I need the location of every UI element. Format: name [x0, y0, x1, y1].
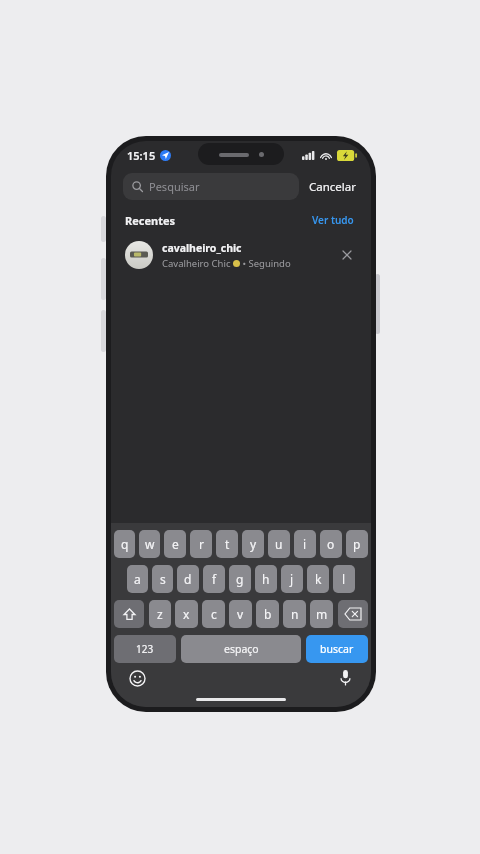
button[interactable]: c	[202, 600, 225, 628]
staticText: d	[184, 571, 192, 587]
button[interactable]: g	[229, 565, 251, 593]
staticText: l	[342, 571, 346, 587]
button[interactable]: n	[283, 600, 306, 628]
button[interactable]: l	[333, 565, 355, 593]
button[interactable]: Shift	[114, 600, 144, 628]
staticText: Recentes	[125, 213, 176, 228]
button[interactable]: p	[346, 530, 368, 558]
staticText: e	[172, 536, 179, 552]
button[interactable]: o	[320, 530, 342, 558]
button[interactable]: h	[255, 565, 277, 593]
button[interactable]: Ditado por voz	[334, 667, 356, 689]
staticText: a	[134, 571, 141, 587]
staticText: Cancelar	[309, 179, 357, 195]
staticText: cavalheiro_chic	[162, 241, 242, 255]
staticText: m	[316, 606, 328, 622]
button[interactable]: v	[229, 600, 252, 628]
button[interactable]: f	[203, 565, 225, 593]
button[interactable]: s	[152, 565, 173, 593]
button[interactable]: Ver tudo	[309, 210, 357, 230]
button[interactable]: Emoji	[126, 667, 148, 689]
button[interactable]: e	[164, 530, 186, 558]
button[interactable]: z	[149, 600, 171, 628]
staticText: h	[262, 571, 270, 587]
button[interactable]: j	[281, 565, 303, 593]
staticText: z	[157, 606, 163, 622]
staticText: t	[225, 536, 230, 552]
button[interactable]: m	[310, 600, 333, 628]
staticText: espaço	[224, 642, 259, 656]
button[interactable]: Pesquisar	[123, 173, 299, 200]
staticText: b	[264, 606, 272, 622]
button[interactable]: u	[268, 530, 290, 558]
button[interactable]: espaço	[181, 635, 301, 663]
staticText: 123	[136, 642, 154, 656]
button[interactable]: x	[175, 600, 198, 628]
staticText: x	[183, 606, 190, 622]
button[interactable]: Remover	[337, 245, 357, 265]
button[interactable]: q	[114, 530, 135, 558]
staticText: g	[236, 571, 244, 587]
button[interactable]: Backspace	[338, 600, 368, 628]
button[interactable]: t	[216, 530, 238, 558]
button[interactable]: Cancelar	[299, 175, 359, 199]
button[interactable]: i	[294, 530, 316, 558]
staticText: v	[237, 606, 244, 622]
staticText: u	[275, 536, 283, 552]
staticText: c	[211, 606, 217, 622]
staticText: w	[145, 536, 155, 552]
staticText: s	[160, 571, 166, 587]
staticText: q	[121, 536, 129, 552]
staticText: • Seguindo	[240, 257, 291, 270]
button[interactable]: b	[256, 600, 279, 628]
button[interactable]: cavalheiro_chic	[111, 236, 371, 274]
staticText: p	[353, 536, 361, 552]
staticText: Ver tudo	[312, 213, 354, 227]
staticText: Cavalheiro Chic	[162, 257, 231, 270]
staticText: i	[303, 536, 307, 552]
button[interactable]: k	[307, 565, 329, 593]
button[interactable]: y	[242, 530, 264, 558]
button[interactable]: d	[177, 565, 199, 593]
button[interactable]: buscar	[306, 635, 368, 663]
button[interactable]: r	[190, 530, 212, 558]
button[interactable]: a	[127, 565, 148, 593]
staticText: j	[290, 571, 294, 587]
staticText: o	[327, 536, 335, 552]
staticText: 15:15	[127, 148, 156, 163]
staticText: n	[291, 606, 299, 622]
staticText: Pesquisar	[149, 179, 200, 194]
staticText: k	[315, 571, 322, 587]
staticText: r	[199, 536, 204, 552]
button[interactable]: w	[139, 530, 160, 558]
staticText: buscar	[320, 642, 354, 656]
staticText: f	[212, 571, 217, 587]
staticText: y	[250, 536, 257, 552]
button[interactable]: 123	[114, 635, 176, 663]
